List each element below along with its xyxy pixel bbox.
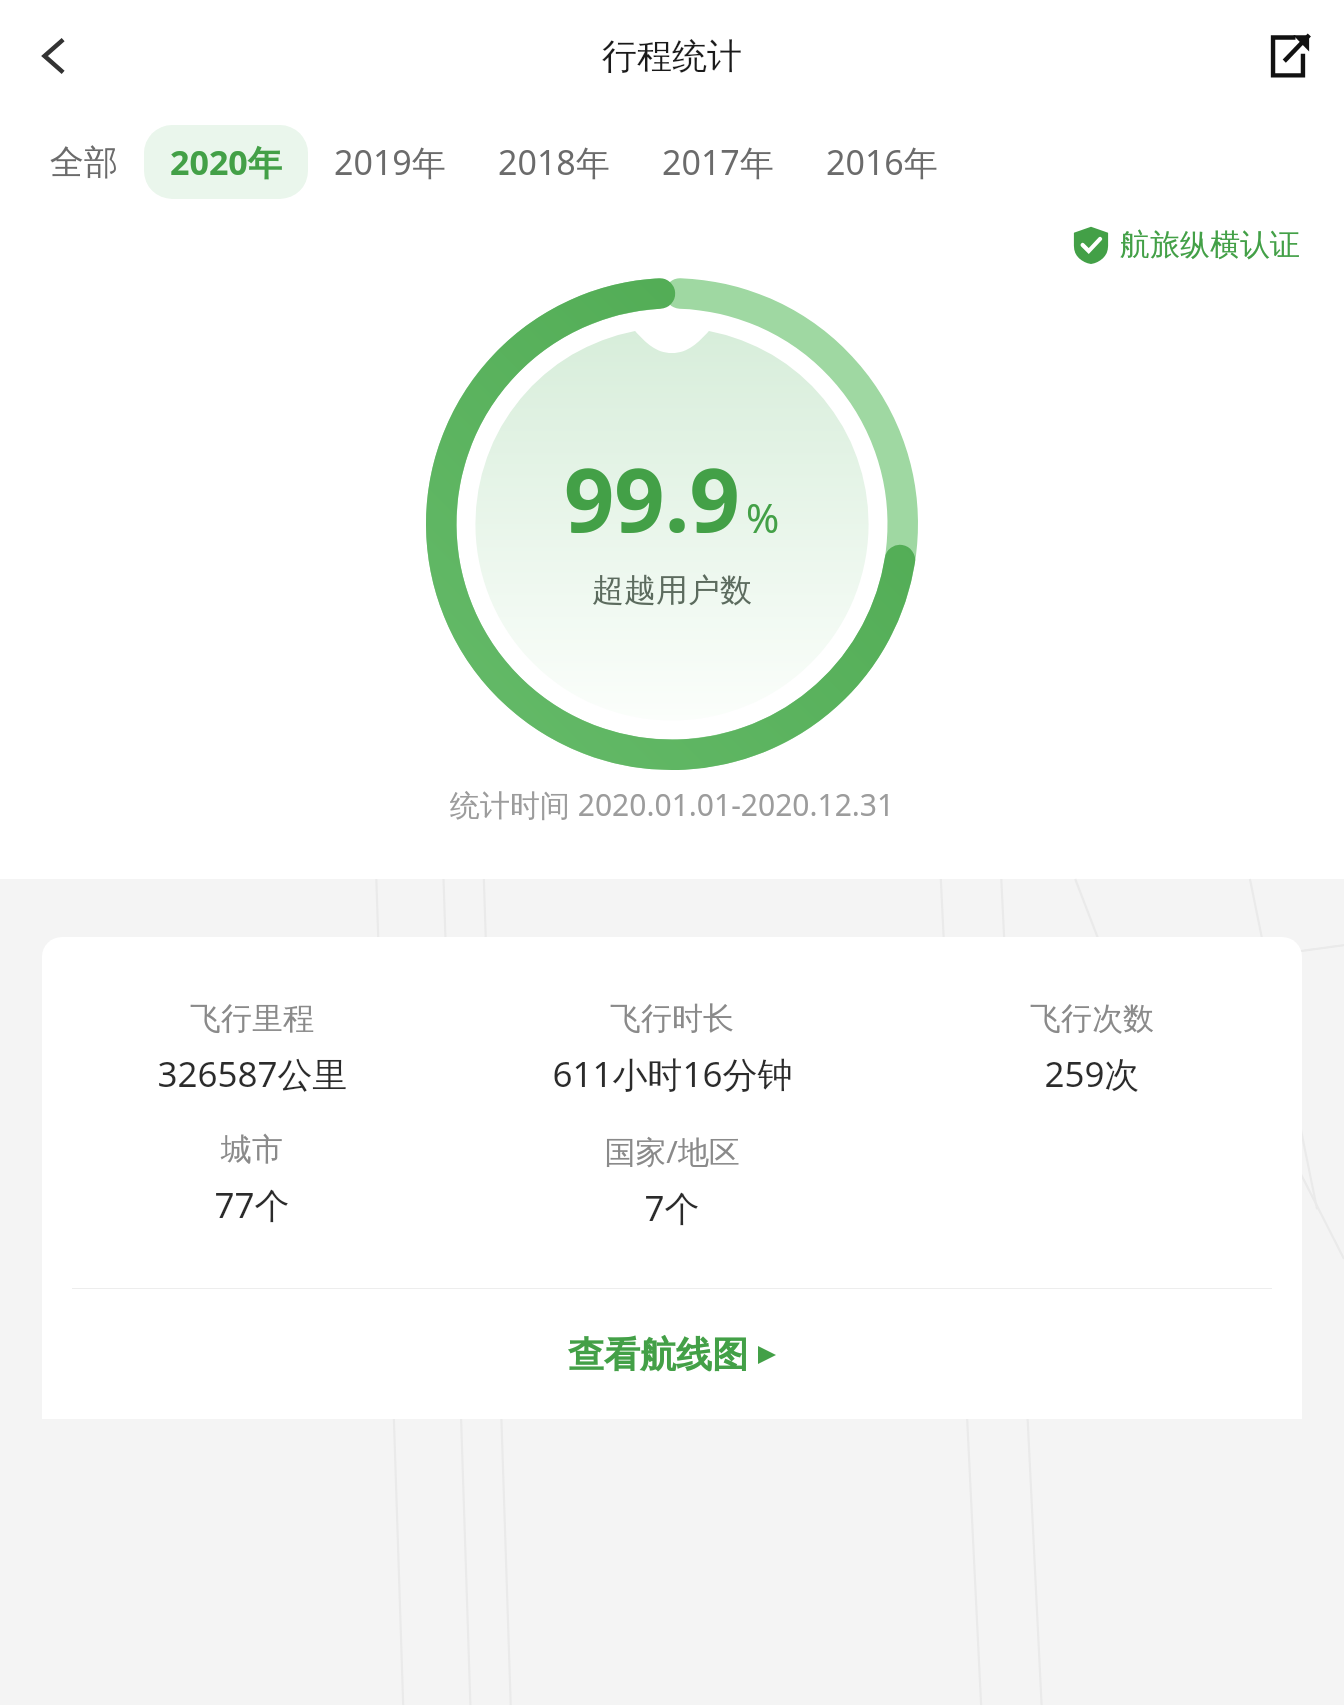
button[interactable]: 2020年: [144, 125, 308, 199]
staticText: 326587公里: [157, 1050, 348, 1098]
staticText: 超越用户数: [592, 570, 752, 610]
staticText: 7个: [644, 1184, 700, 1232]
button[interactable]: 全部: [24, 127, 144, 198]
staticText: 2019年: [334, 139, 446, 185]
staticText: 飞行时长: [610, 999, 734, 1038]
staticText: 2017年: [662, 139, 774, 185]
staticText: %: [746, 490, 780, 544]
button[interactable]: 2017年: [636, 125, 800, 199]
staticText: 611小时16分钟: [552, 1050, 793, 1098]
staticText: 城市: [221, 1130, 283, 1169]
staticText: 飞行里程: [190, 999, 314, 1038]
staticText: 2016年: [826, 139, 938, 185]
staticText: 飞行次数: [1030, 999, 1154, 1038]
button[interactable]: 查看航线图: [42, 1289, 1302, 1419]
button[interactable]: Share: [1252, 20, 1324, 92]
staticText: 统计时间 2020.01.01-2020.12.31: [450, 784, 895, 825]
button[interactable]: 2018年: [472, 125, 636, 199]
staticText: 99.9: [564, 438, 740, 558]
staticText: 77个: [214, 1181, 290, 1229]
staticText: 2020年: [170, 139, 282, 185]
button[interactable]: Back: [18, 20, 90, 92]
button[interactable]: 2019年: [308, 125, 472, 199]
staticText: 2018年: [498, 139, 610, 185]
staticText: 行程统计: [602, 34, 742, 78]
staticText: 国家/地区: [604, 1130, 740, 1172]
staticText: 航旅纵横认证: [1120, 226, 1300, 264]
staticText: 全部: [50, 141, 118, 184]
staticText: 259次: [1044, 1050, 1140, 1098]
button[interactable]: 航旅纵横认证: [1072, 226, 1300, 264]
staticText: 查看航线图: [568, 1332, 748, 1377]
button[interactable]: 2016年: [800, 125, 964, 199]
